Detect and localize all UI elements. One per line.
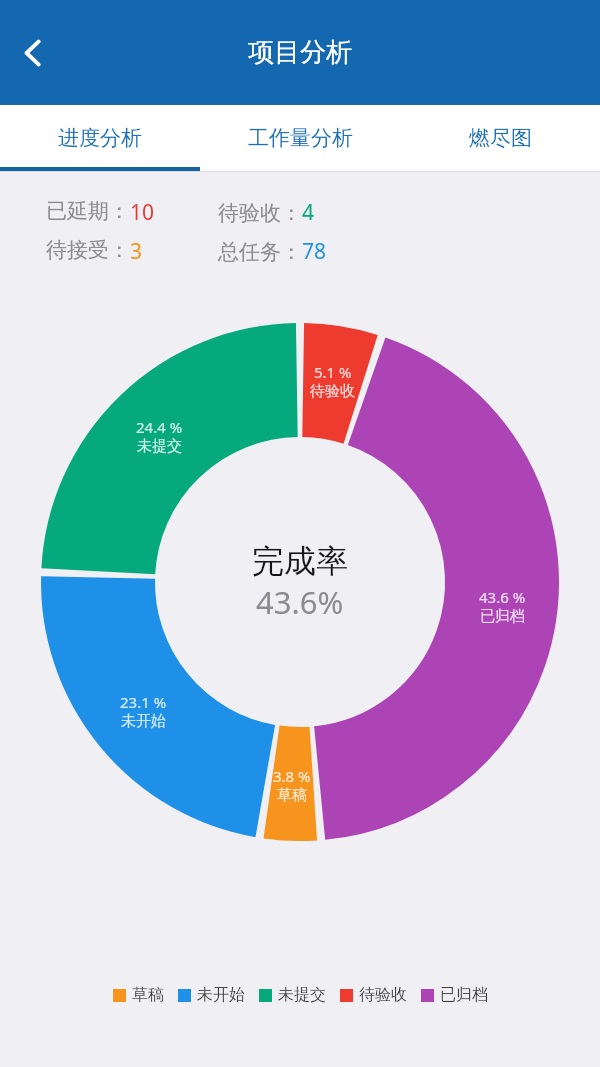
button[interactable]: 燃尽图: [400, 105, 600, 171]
staticText: 工作量分析: [248, 125, 353, 151]
button[interactable]: 未开始: [178, 985, 245, 1005]
staticText: 待验收: [359, 985, 407, 1005]
button[interactable]: 进度分析: [0, 105, 200, 171]
button[interactable]: 未提交: [259, 985, 326, 1005]
button[interactable]: 草稿: [113, 985, 164, 1005]
staticText: 草稿: [132, 985, 164, 1005]
staticText: 3: [130, 237, 143, 266]
staticText: 24.4 %: [136, 417, 183, 437]
button[interactable]: 已归档: [421, 985, 488, 1005]
staticText: 5.1 %: [314, 362, 352, 382]
staticText: 78: [302, 237, 327, 266]
staticText: 项目分析: [248, 36, 352, 69]
staticText: 燃尽图: [469, 125, 532, 151]
staticText: 未开始: [197, 985, 245, 1005]
staticText: 43.6 %: [479, 587, 526, 607]
staticText: 待验收：: [218, 200, 302, 226]
staticText: 已归档: [480, 607, 525, 626]
staticText: 总任务：: [218, 239, 302, 265]
button[interactable]: 待验收: [340, 985, 407, 1005]
staticText: 未提交: [137, 437, 182, 456]
staticText: 3.8 %: [273, 766, 311, 786]
staticText: 完成率: [252, 541, 348, 581]
staticText: 进度分析: [58, 125, 142, 151]
staticText: 23.1 %: [120, 692, 167, 712]
staticText: 未开始: [121, 712, 166, 731]
staticText: 已延期：: [46, 198, 130, 224]
staticText: 43.6%: [256, 581, 344, 623]
staticText: 10: [130, 198, 155, 227]
staticText: 草稿: [277, 786, 307, 805]
staticText: 未提交: [278, 985, 326, 1005]
staticText: 待接受：: [46, 237, 130, 263]
button[interactable]: 工作量分析: [200, 105, 400, 171]
staticText: 4: [302, 198, 315, 227]
staticText: 待验收: [310, 382, 355, 401]
staticText: 已归档: [440, 985, 488, 1005]
button[interactable]: Back: [4, 24, 62, 82]
